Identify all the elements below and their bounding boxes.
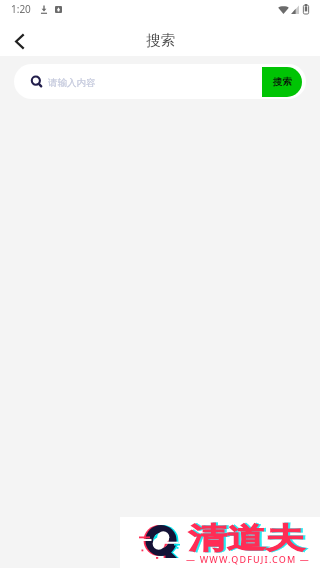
staticText: 搜索 — [146, 31, 175, 49]
staticText: 请输入内容 — [48, 77, 96, 89]
staticText: 1:20 — [11, 2, 31, 16]
button[interactable]: 请输入内容 — [14, 64, 306, 99]
button[interactable]: Back — [4, 26, 34, 56]
staticText: 清道夫 — [188, 520, 304, 556]
staticText: 清道夫 — [190, 520, 306, 556]
staticText: — WWW.QDFUJI.COM — — [186, 553, 311, 565]
staticText: 搜索 — [273, 76, 292, 88]
button[interactable]: 搜索 — [262, 67, 302, 97]
